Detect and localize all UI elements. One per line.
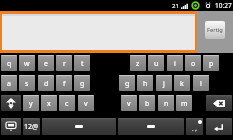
- staticText: l: [200, 79, 202, 89]
- staticText: u: [154, 59, 159, 69]
- button[interactable]: v: [121, 95, 137, 111]
- button[interactable]: s: [19, 75, 35, 91]
- staticText: 21: [172, 2, 179, 10]
- staticText: p: [209, 59, 214, 69]
- button[interactable]: Space: [42, 118, 116, 135]
- button[interactable]: g: [74, 75, 90, 91]
- staticText: z: [136, 59, 140, 69]
- button[interactable]: . ,: [186, 118, 203, 135]
- button[interactable]: z: [130, 55, 146, 71]
- button[interactable]: q: [1, 55, 17, 71]
- staticText: 12@: [24, 122, 39, 132]
- staticText: a: [7, 79, 11, 89]
- button[interactable]: h: [137, 75, 153, 91]
- button[interactable]: [2, 14, 195, 50]
- button[interactable]: v: [78, 95, 94, 111]
- staticText: q: [7, 59, 12, 69]
- staticText: e: [44, 59, 48, 69]
- staticText: Fertig: [207, 26, 223, 34]
- button[interactable]: d: [38, 75, 54, 91]
- button[interactable]: b: [139, 95, 155, 111]
- button[interactable]: r: [56, 55, 72, 71]
- staticText: i: [174, 59, 176, 69]
- button[interactable]: g: [119, 75, 135, 91]
- button[interactable]: Hide keyboard: [1, 118, 21, 135]
- staticText: y: [29, 99, 33, 109]
- staticText: 10:27: [215, 1, 232, 10]
- button[interactable]: j: [156, 75, 172, 91]
- staticText: x: [47, 99, 51, 109]
- button[interactable]: l: [193, 75, 209, 91]
- staticText: b: [145, 99, 150, 109]
- staticText: g: [80, 79, 85, 89]
- staticText: t: [81, 59, 84, 69]
- staticText: . ,: [192, 125, 197, 133]
- button[interactable]: c: [59, 95, 75, 111]
- button[interactable]: x: [41, 95, 57, 111]
- button[interactable]: f: [56, 75, 72, 91]
- staticText: m: [181, 99, 188, 109]
- button[interactable]: o: [185, 55, 201, 71]
- staticText: r: [63, 59, 66, 69]
- staticText: h: [143, 79, 148, 89]
- button[interactable]: 12@: [23, 118, 40, 135]
- button[interactable]: e: [38, 55, 54, 71]
- button[interactable]: a: [1, 75, 17, 91]
- staticText: k: [180, 79, 184, 89]
- staticText: o: [191, 59, 196, 69]
- staticText: d: [44, 79, 49, 89]
- button[interactable]: Enter: [206, 118, 232, 135]
- staticText: v: [84, 99, 88, 109]
- button[interactable]: Space: [118, 118, 184, 135]
- staticText: v: [127, 99, 131, 109]
- button[interactable]: Backspace: [206, 95, 232, 111]
- button[interactable]: w: [19, 55, 35, 71]
- staticText: w: [24, 59, 30, 69]
- button[interactable]: t: [74, 55, 90, 71]
- button[interactable]: Fertig: [205, 21, 225, 39]
- staticText: j: [163, 79, 165, 89]
- staticText: c: [65, 99, 69, 109]
- button[interactable]: k: [174, 75, 190, 91]
- button[interactable]: i: [167, 55, 183, 71]
- button[interactable]: u: [148, 55, 164, 71]
- button[interactable]: p: [203, 55, 219, 71]
- staticText: n: [164, 99, 169, 109]
- button[interactable]: n: [158, 95, 174, 111]
- staticText: f: [63, 79, 66, 89]
- staticText: g: [125, 79, 130, 89]
- staticText: s: [25, 79, 29, 89]
- button[interactable]: Shift: [1, 95, 21, 111]
- button[interactable]: m: [176, 95, 192, 111]
- button[interactable]: y: [23, 95, 39, 111]
